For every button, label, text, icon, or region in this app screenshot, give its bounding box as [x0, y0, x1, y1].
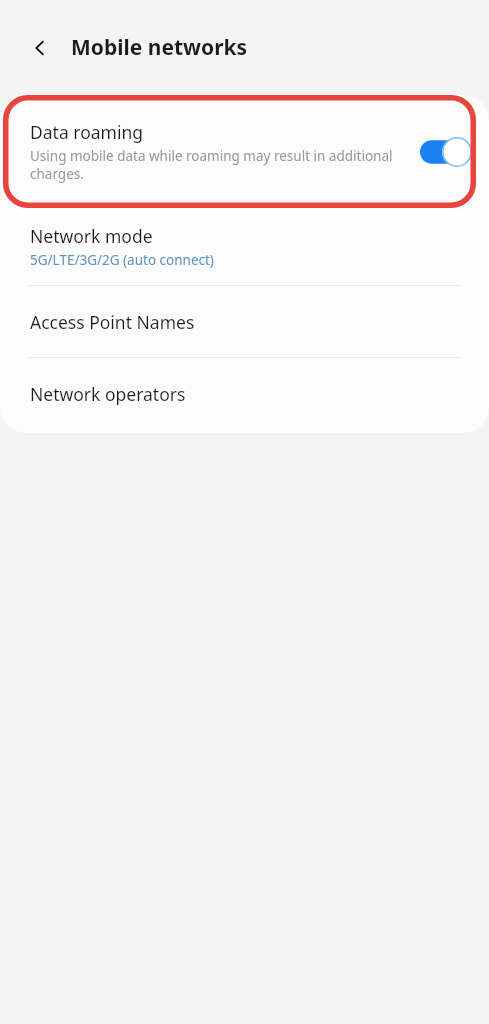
button[interactable]: Access Point Names [0, 286, 489, 357]
staticText: Access Point Names [30, 310, 195, 334]
staticText: Using mobile data while roaming may resu… [30, 147, 407, 183]
button[interactable]: Back [17, 25, 63, 71]
staticText: Data roaming [30, 120, 144, 144]
staticText: Network operators [30, 382, 186, 406]
staticText: 5G/LTE/3G/2G (auto connect) [30, 251, 214, 269]
button[interactable]: Data roaming toggle [417, 131, 475, 173]
staticText: Network mode [30, 224, 153, 248]
button[interactable]: Data roaming [0, 95, 489, 208]
staticText: Mobile networks [71, 33, 248, 62]
button[interactable]: Network mode [0, 208, 489, 285]
button[interactable]: Network operators [0, 358, 489, 429]
